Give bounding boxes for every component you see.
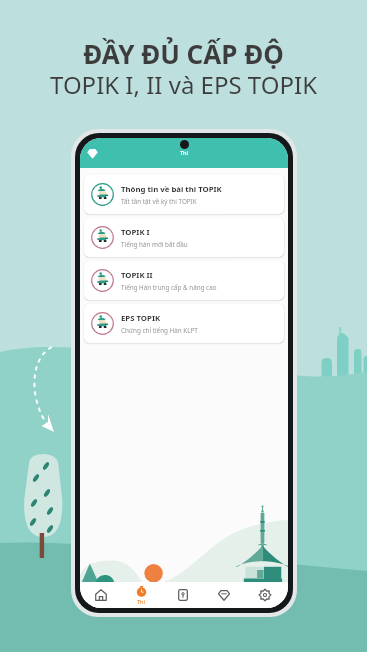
staticText: TOPIK I, II và EPS TOPIK	[50, 68, 317, 101]
staticText: ĐẦY ĐỦ CẤP ĐỘ	[83, 36, 284, 71]
staticText: Tiếng hàn mới bắt đầu	[121, 240, 188, 249]
button[interactable]: Favorites	[203, 582, 244, 608]
staticText: Tiếng Hàn trung cấp & nâng cao	[121, 283, 217, 292]
staticText: TOPIK I	[121, 227, 150, 238]
staticText: Chứng chỉ tiếng Hàn KLPT	[121, 326, 198, 335]
staticText: Thi	[180, 149, 189, 156]
button[interactable]: TOPIK I	[84, 218, 284, 257]
staticText: EPS TOPIK	[121, 313, 161, 324]
button[interactable]: Home	[80, 582, 121, 608]
button[interactable]: EPS TOPIK	[84, 304, 284, 343]
staticText: Tất tần tật về kỳ thi TOPIK	[121, 197, 197, 206]
button[interactable]: Settings	[244, 582, 285, 608]
button[interactable]: TOPIK II	[84, 261, 284, 300]
staticText: Thông tin về bài thi TOPIK	[121, 184, 222, 195]
button[interactable]: Thi	[121, 582, 162, 608]
staticText: Thi	[137, 598, 146, 605]
button[interactable]: Thông tin về bài thi TOPIK	[84, 175, 284, 214]
button[interactable]: Premium	[87, 148, 98, 159]
staticText: TOPIK II	[121, 270, 153, 281]
button[interactable]: Documents	[162, 582, 203, 608]
